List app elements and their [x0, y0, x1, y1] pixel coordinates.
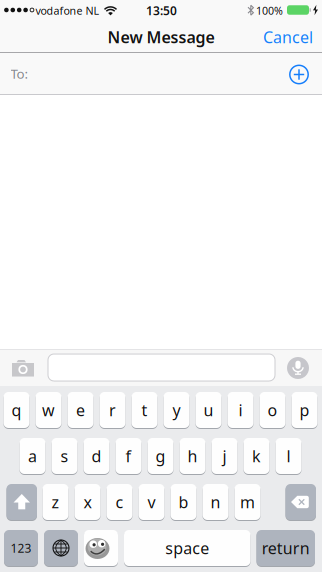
button[interactable]: u: [195, 391, 221, 428]
staticText: i: [238, 399, 242, 421]
button[interactable]: x: [74, 483, 100, 520]
button[interactable]: z: [42, 483, 68, 520]
button[interactable]: v: [138, 483, 164, 520]
button[interactable]: s: [51, 437, 77, 474]
staticText: v: [147, 491, 155, 513]
button[interactable]: Shift: [6, 483, 37, 520]
button[interactable]: e: [67, 391, 93, 428]
staticText: o: [267, 399, 277, 421]
staticText: p: [299, 399, 309, 421]
staticText: j: [222, 445, 226, 467]
button[interactable]: k: [243, 437, 269, 474]
button[interactable]: j: [211, 437, 237, 474]
button[interactable]: g: [147, 437, 173, 474]
staticText: Cancel: [263, 26, 313, 48]
button[interactable]: 123: [4, 529, 38, 566]
button[interactable]: o: [259, 391, 285, 428]
staticText: f: [125, 445, 131, 467]
staticText: u: [203, 399, 213, 421]
button[interactable]: r: [99, 391, 125, 428]
staticText: z: [51, 491, 59, 513]
staticText: m: [240, 491, 255, 513]
button[interactable]: Voice Message: [287, 357, 309, 379]
button[interactable]: c: [106, 483, 132, 520]
button[interactable]: l: [275, 437, 301, 474]
staticText: space: [165, 537, 209, 559]
staticText: y: [172, 399, 180, 421]
staticText: q: [11, 399, 21, 421]
button[interactable]: b: [170, 483, 196, 520]
button[interactable]: t: [131, 391, 157, 428]
button[interactable]: space: [124, 529, 250, 566]
button[interactable]: Next Keyboard: [44, 529, 78, 566]
staticText: 13:50: [146, 2, 177, 18]
staticText: g: [155, 445, 165, 467]
button[interactable]: y: [163, 391, 189, 428]
button[interactable]: p: [291, 391, 317, 428]
staticText: b: [178, 491, 188, 513]
staticText: r: [109, 399, 116, 421]
button[interactable]: To: [0, 53, 322, 94]
button[interactable]: a: [19, 437, 45, 474]
staticText: n: [210, 491, 220, 513]
staticText: c: [115, 491, 123, 513]
button[interactable]: i: [227, 391, 253, 428]
button[interactable]: return: [256, 529, 315, 566]
button[interactable]: n: [202, 483, 228, 520]
staticText: l: [286, 445, 290, 467]
staticText: New Message: [107, 26, 214, 48]
button[interactable]: Delete: [285, 483, 316, 520]
staticText: d: [91, 445, 101, 467]
staticText: 100%: [256, 3, 283, 18]
staticText: vodafone NL: [35, 3, 99, 18]
staticText: t: [141, 399, 147, 421]
button[interactable]: f: [115, 437, 141, 474]
button[interactable]: Cancel: [259, 22, 317, 52]
button[interactable]: d: [83, 437, 109, 474]
staticText: 123: [10, 540, 31, 556]
button[interactable]: Message: [48, 354, 275, 381]
button[interactable]: h: [179, 437, 205, 474]
staticText: w: [42, 399, 55, 421]
button[interactable]: m: [234, 483, 260, 520]
staticText: x: [83, 491, 91, 513]
staticText: h: [187, 445, 197, 467]
button[interactable]: q: [3, 391, 29, 428]
staticText: e: [76, 399, 85, 421]
button[interactable]: Add Contact: [289, 64, 309, 84]
button[interactable]: Emoji: [84, 529, 118, 566]
button[interactable]: w: [35, 391, 61, 428]
button[interactable]: Camera: [11, 359, 35, 377]
staticText: return: [262, 537, 310, 559]
staticText: To:: [10, 65, 28, 82]
staticText: k: [252, 445, 261, 467]
staticText: a: [28, 445, 37, 467]
staticText: s: [60, 445, 68, 467]
